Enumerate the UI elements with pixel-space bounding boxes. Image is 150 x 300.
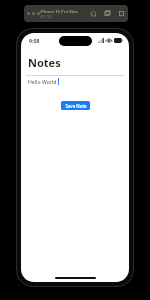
button[interactable]: Save Note (61, 101, 90, 110)
button[interactable]: Window control (37, 12, 40, 15)
button[interactable]: Home (90, 10, 97, 17)
staticText: Notes (28, 55, 61, 70)
button[interactable]: Record (118, 10, 125, 17)
staticText: iOS 18.2 (40, 15, 53, 19)
staticText: Hello World (28, 78, 57, 85)
staticText: Save Note (65, 103, 87, 109)
button[interactable]: Window control (27, 12, 30, 15)
button[interactable]: Window control (32, 12, 35, 15)
staticText: 9:08 (29, 37, 40, 44)
button[interactable]: Screenshot (104, 10, 111, 17)
button[interactable]: Hello World (26, 75, 124, 87)
staticText: iPhone 16 Pro Max (40, 9, 78, 15)
